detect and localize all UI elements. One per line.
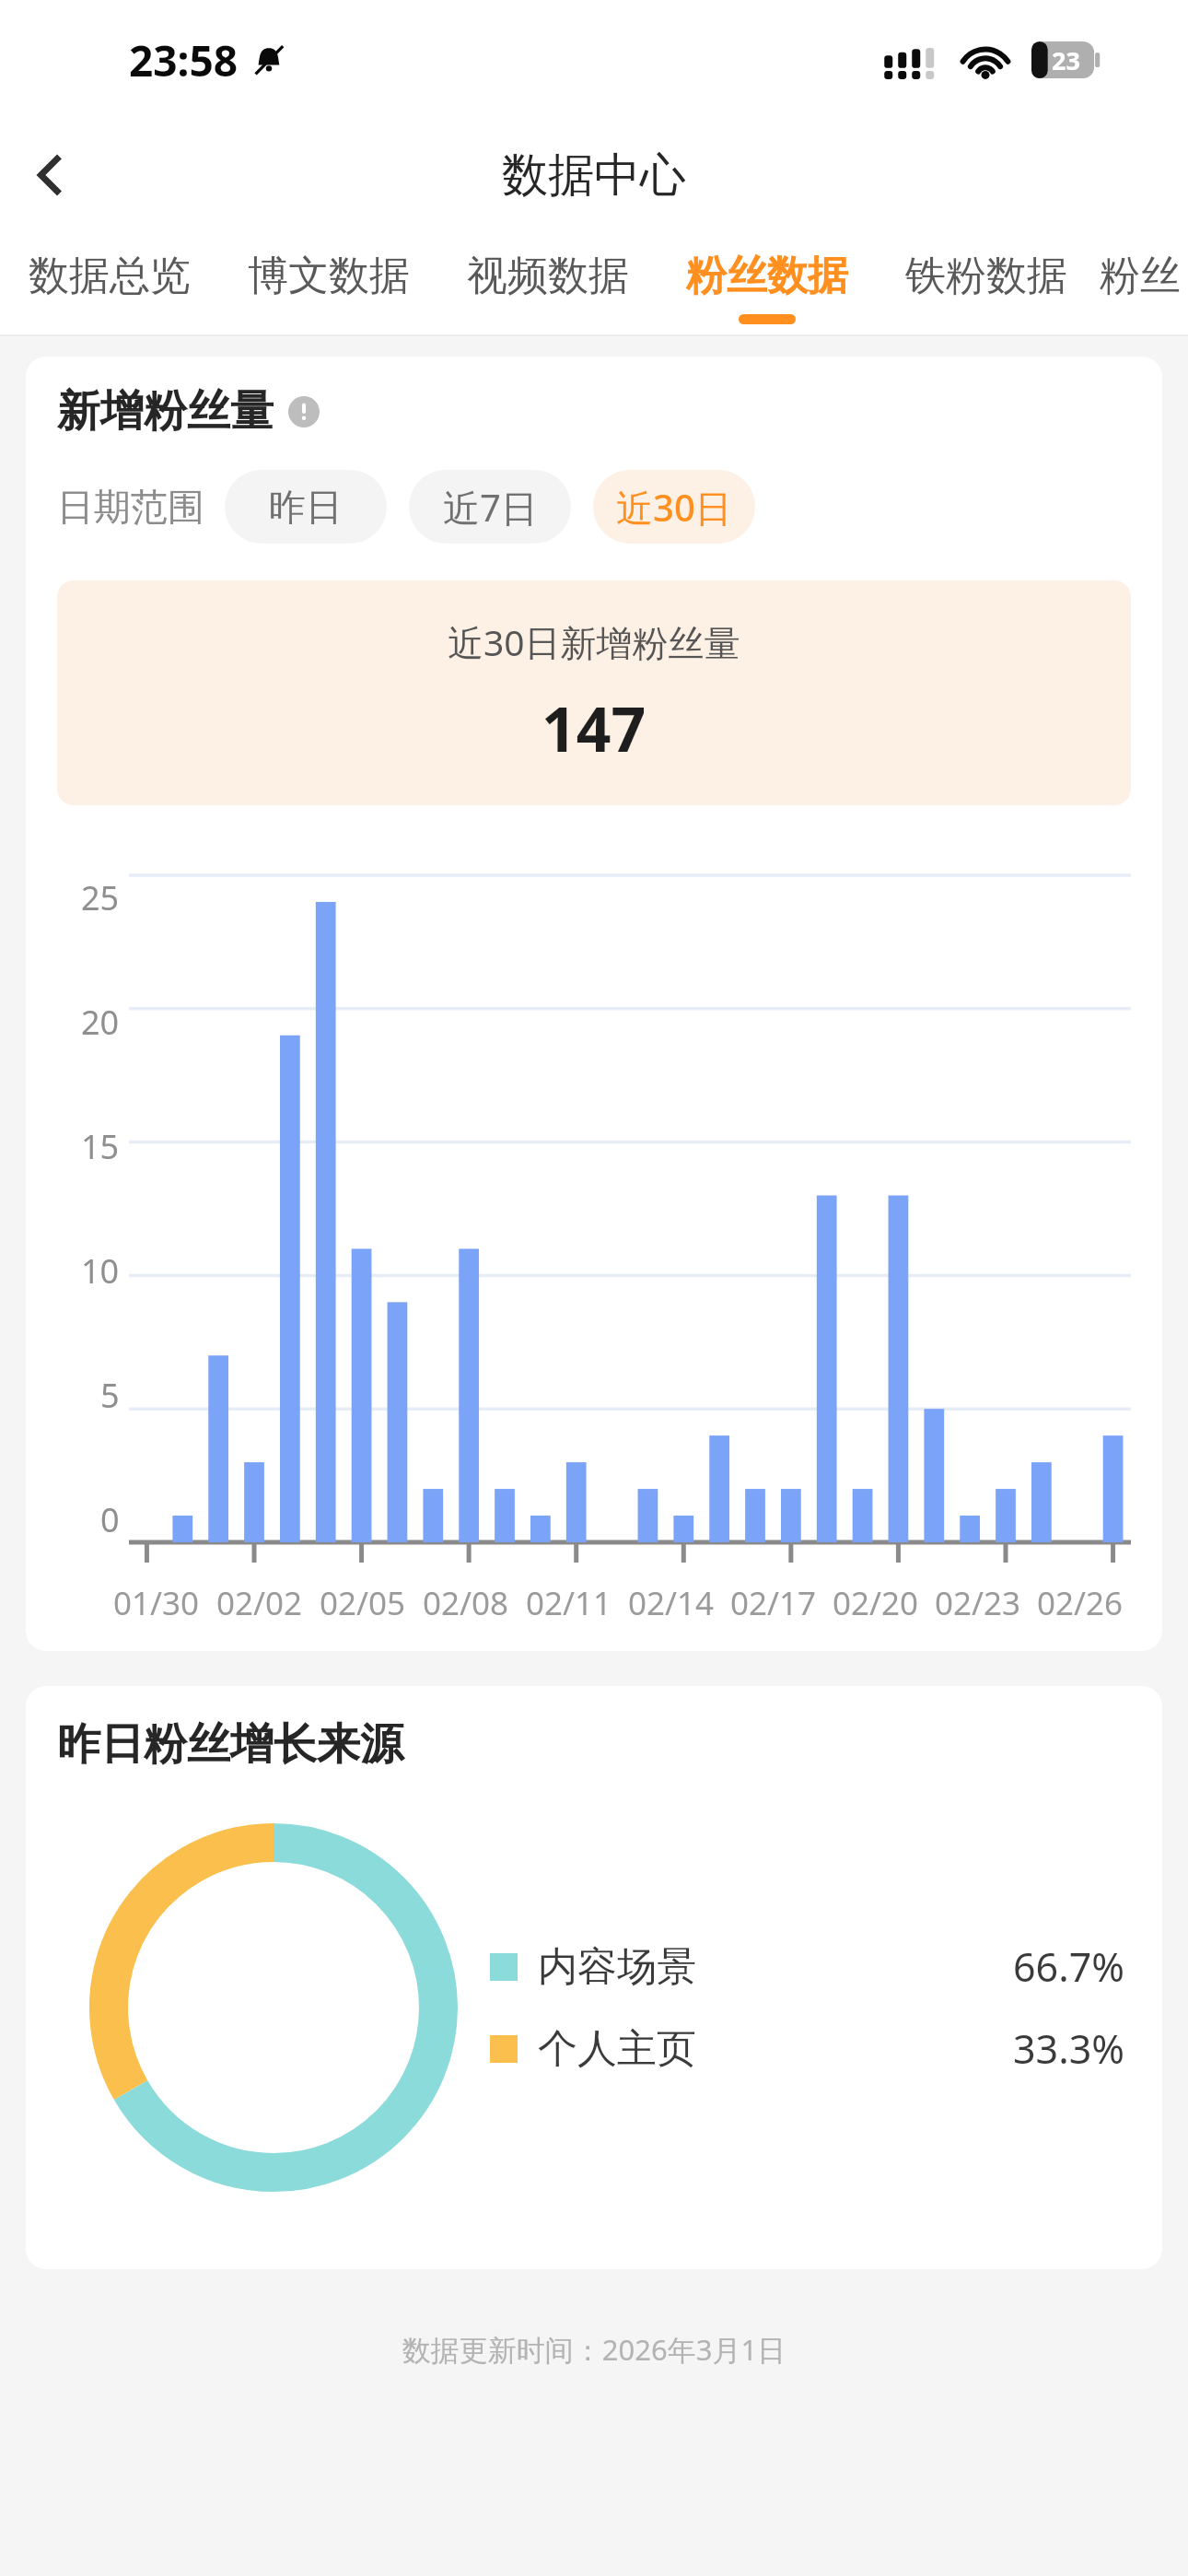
staticText: 02/02 (216, 1581, 303, 1625)
staticText: 01/30 (113, 1581, 200, 1625)
staticText: 博文数据 (248, 251, 410, 301)
staticText: 数据更新时间：2026年3月1日 (0, 2330, 1188, 2369)
staticText: 02/11 (526, 1581, 612, 1625)
staticText: 0 (100, 1497, 120, 1542)
button[interactable]: 铁粉数据 (877, 230, 1096, 336)
staticText: 铁粉数据 (905, 251, 1067, 301)
staticText: 23:58 (129, 31, 239, 89)
staticText: 33.3% (1013, 2021, 1125, 2076)
button[interactable]: 个人主页 (490, 2021, 1131, 2076)
staticText: 10 (81, 1248, 120, 1294)
button[interactable]: 昨日 (225, 470, 387, 544)
staticText: 昨日 (269, 484, 343, 530)
staticText: 数据总览 (29, 251, 191, 301)
button[interactable]: 说明 (288, 396, 320, 427)
button[interactable]: 数据总览 (0, 230, 219, 336)
staticText: 5 (100, 1373, 120, 1418)
staticText: 日期范围 (57, 484, 204, 530)
button[interactable]: 粉丝数据 (658, 230, 877, 336)
button[interactable]: 粉丝 (1096, 230, 1184, 336)
staticText: 内容场景 (538, 1942, 696, 1992)
staticText: 昨日粉丝增长来源 (57, 1717, 403, 1772)
staticText: 02/05 (320, 1581, 406, 1625)
staticText: 20 (81, 1000, 120, 1045)
staticText: 02/26 (1037, 1581, 1124, 1625)
staticText: 新增粉丝量 (57, 384, 274, 439)
staticText: 数据中心 (502, 146, 686, 205)
staticText: 02/14 (628, 1581, 715, 1625)
staticText: 15 (81, 1124, 120, 1169)
button[interactable]: 近30日 (593, 470, 755, 544)
staticText: 02/17 (730, 1581, 817, 1625)
button[interactable]: 内容场景 (490, 1939, 1131, 1994)
staticText: 近30日新增粉丝量 (448, 617, 740, 666)
button[interactable]: Back (0, 124, 101, 226)
button[interactable]: 近7日 (409, 470, 571, 544)
staticText: 粉丝 (1100, 251, 1181, 301)
staticText: 粉丝数据 (686, 251, 848, 301)
button[interactable]: 视频数据 (438, 230, 658, 336)
staticText: 25 (81, 875, 120, 920)
staticText: 02/08 (423, 1581, 509, 1625)
staticText: 近30日 (616, 482, 732, 533)
staticText: 02/20 (833, 1581, 919, 1625)
staticText: 近7日 (443, 482, 538, 533)
staticText: 66.7% (1013, 1939, 1125, 1994)
staticText: 147 (542, 686, 646, 769)
button[interactable]: 博文数据 (219, 230, 438, 336)
staticText: 个人主页 (538, 2024, 696, 2074)
staticText: 02/23 (935, 1581, 1021, 1625)
staticText: 23 (1052, 43, 1080, 77)
staticText: 视频数据 (467, 251, 629, 301)
